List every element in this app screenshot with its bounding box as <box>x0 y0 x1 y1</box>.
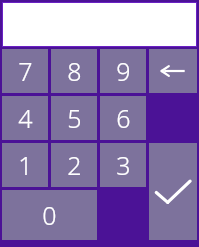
staticText: 9 <box>116 54 131 88</box>
staticText: 6 <box>116 101 131 135</box>
staticText: 5 <box>67 101 82 135</box>
button[interactable]: Confirm <box>149 143 197 240</box>
button[interactable]: 3 <box>100 143 146 187</box>
button[interactable] <box>2 2 197 47</box>
button[interactable]: 7 <box>2 49 48 93</box>
button[interactable]: 1 <box>2 143 48 187</box>
button[interactable]: Backspace <box>149 49 197 93</box>
staticText: 1 <box>18 148 33 182</box>
staticText: 7 <box>18 54 33 88</box>
button[interactable]: 9 <box>100 49 146 93</box>
staticText: 0 <box>42 198 57 232</box>
button[interactable]: 2 <box>51 143 97 187</box>
button[interactable]: 5 <box>51 96 97 140</box>
staticText: 2 <box>67 148 82 182</box>
button[interactable]: 4 <box>2 96 48 140</box>
staticText: 3 <box>116 148 131 182</box>
staticText: 4 <box>18 101 33 135</box>
button[interactable]: 6 <box>100 96 146 140</box>
button[interactable]: 8 <box>51 49 97 93</box>
staticText: 8 <box>67 54 82 88</box>
button[interactable]: 0 <box>2 190 97 240</box>
